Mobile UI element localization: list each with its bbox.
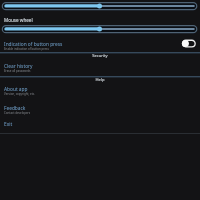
staticText: Indication of button press [4,41,63,48]
button[interactable]: Slider [0,2,200,11]
staticText: Erase all passwords [4,69,31,73]
staticText: Exit [4,121,13,128]
staticText: Mouse wheel [4,17,33,23]
staticText: Enable indication of button press [4,47,49,51]
staticText: Help [0,77,200,83]
button[interactable]: Toggle indication of button press [178,38,198,50]
button[interactable]: Slider [0,25,200,34]
button[interactable]: Exit [0,118,200,127]
button[interactable]: Feedback [0,102,200,115]
staticText: Feedback [4,105,26,112]
staticText: Contact developers [4,111,31,115]
button[interactable]: About app [0,83,200,96]
button[interactable]: Clear history [0,60,200,73]
staticText: Clear history [4,63,33,70]
staticText: About app [4,86,28,93]
staticText: Security [0,53,200,59]
staticText: Version, copyright, etc. [4,92,35,96]
button[interactable]: Indication of button press [0,38,200,51]
